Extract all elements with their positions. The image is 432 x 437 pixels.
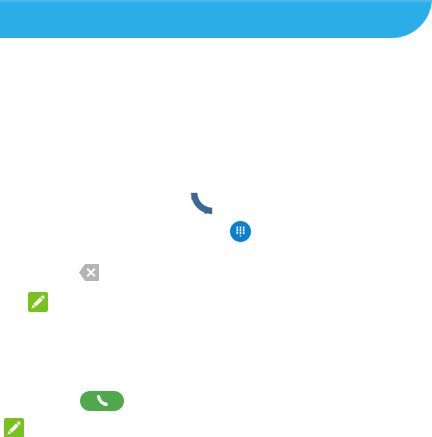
button[interactable]: Call (191, 194, 211, 214)
button[interactable]: Keypad (230, 221, 251, 242)
button[interactable]: Compose (4, 418, 24, 437)
button[interactable]: Call (80, 391, 124, 411)
button[interactable]: Compose (28, 292, 48, 312)
button[interactable]: Delete (79, 264, 99, 281)
